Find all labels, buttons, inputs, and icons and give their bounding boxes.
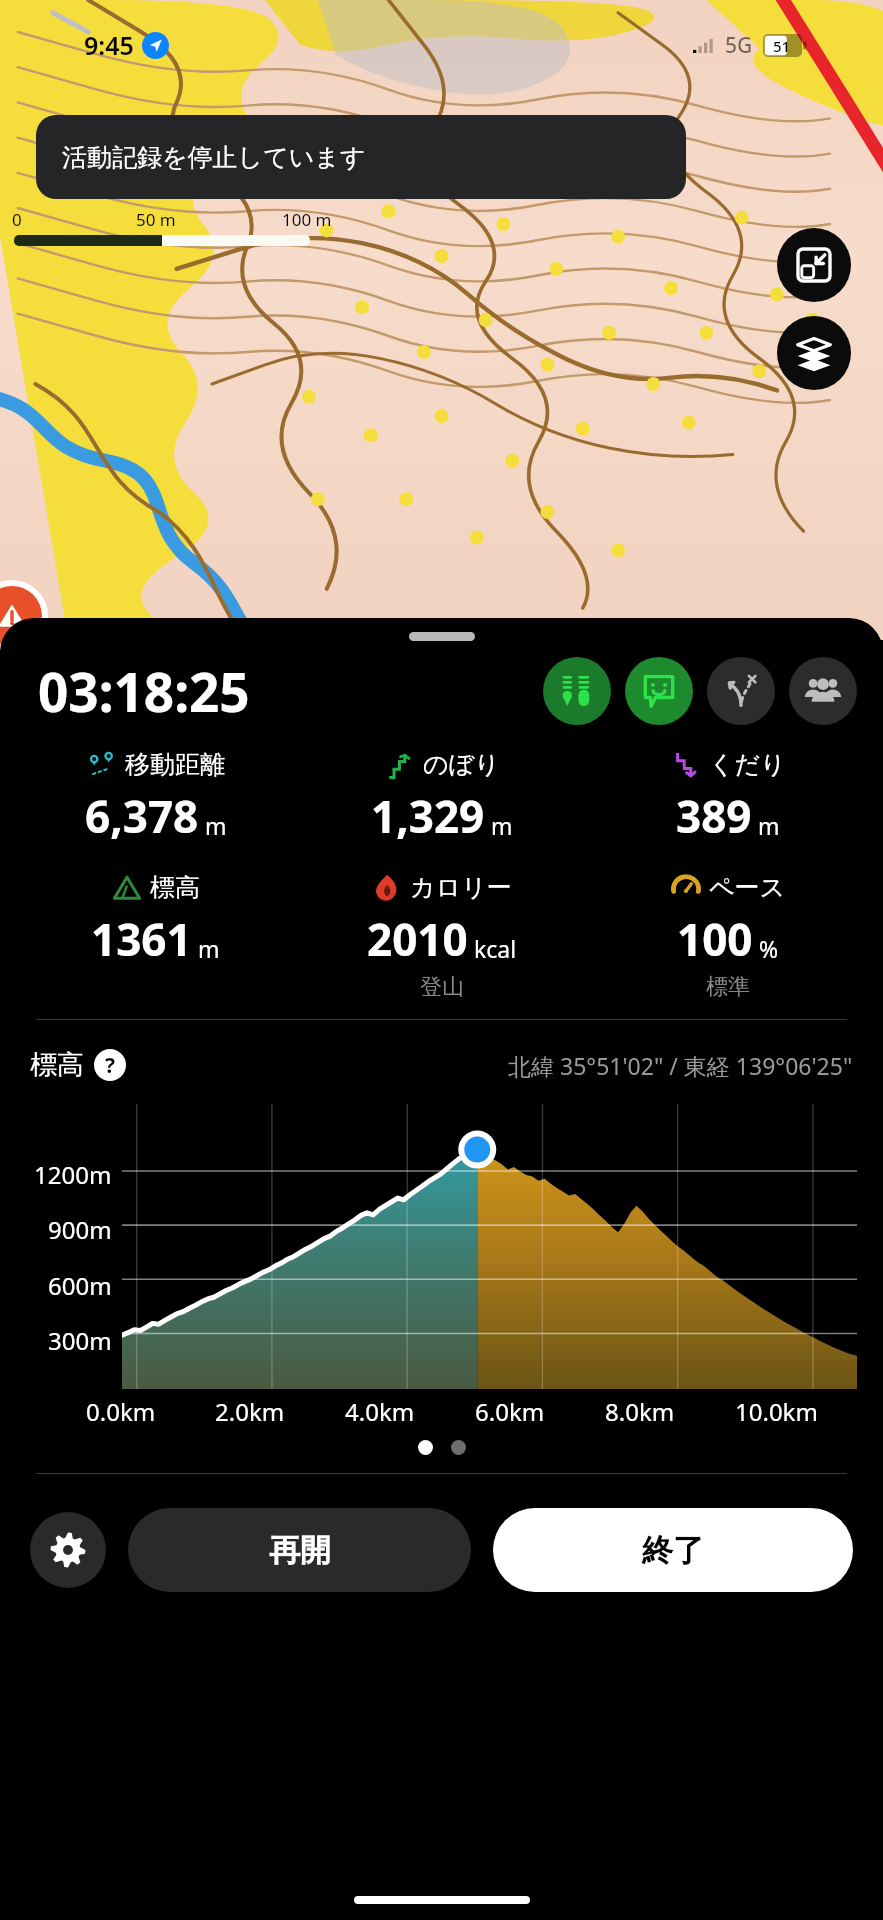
button[interactable]: Map layers xyxy=(777,316,851,390)
staticText: 2.0km xyxy=(215,1395,285,1428)
staticText: 0 xyxy=(12,208,22,231)
staticText: 300m xyxy=(48,1324,112,1357)
staticText: 900m xyxy=(48,1213,112,1246)
button[interactable]: Warning xyxy=(0,580,48,652)
staticText: 活動記録を停止しています xyxy=(62,142,366,173)
staticText: カロリー xyxy=(410,872,512,903)
staticText: 4.0km xyxy=(345,1395,415,1428)
staticText: 50 m xyxy=(136,208,176,231)
staticText: kcal xyxy=(474,933,517,964)
staticText: のぼり xyxy=(423,749,500,780)
staticText: 51 xyxy=(773,36,791,56)
staticText: 8.0km xyxy=(605,1395,675,1428)
staticText: 標高 xyxy=(150,872,200,903)
staticText: 6.0km xyxy=(475,1395,545,1428)
staticText: ペース xyxy=(709,872,786,903)
button[interactable]: Route xyxy=(707,657,775,725)
staticText: m xyxy=(205,810,227,841)
staticText: 再開 xyxy=(269,1531,331,1570)
staticText: 標準 xyxy=(706,973,750,1001)
button[interactable]: Members xyxy=(789,657,857,725)
staticText: 6,378 xyxy=(85,786,199,846)
staticText: 389 xyxy=(676,786,752,846)
staticText: くだり xyxy=(709,749,786,780)
button[interactable]: Fit to screen xyxy=(777,228,851,302)
staticText: 0.0km xyxy=(86,1395,156,1428)
staticText: m xyxy=(758,810,780,841)
staticText: 2010 xyxy=(367,909,468,969)
staticText: 1200m xyxy=(34,1158,112,1191)
staticText: m xyxy=(491,810,513,841)
staticText: 5G xyxy=(725,31,753,60)
staticText: 北緯 35°51'02" / 東経 139°06'25" xyxy=(508,1050,853,1081)
staticText: 600m xyxy=(48,1269,112,1302)
staticText: 登山 xyxy=(420,973,464,1001)
button[interactable]: 活動記録を停止しています xyxy=(36,115,686,199)
button[interactable]: Help xyxy=(94,1049,126,1081)
staticText: % xyxy=(759,933,779,964)
button[interactable]: Add note xyxy=(625,657,693,725)
staticText: 100 m xyxy=(282,208,332,231)
staticText: 標高 xyxy=(30,1048,84,1082)
staticText: 終了 xyxy=(642,1531,704,1570)
staticText: 1,329 xyxy=(371,786,485,846)
button[interactable]: Settings xyxy=(30,1512,106,1588)
staticText: m xyxy=(198,933,220,964)
staticText: 03:18:25 xyxy=(38,655,250,727)
button[interactable]: 再開 xyxy=(128,1508,471,1592)
staticText: 移動距離 xyxy=(125,749,225,780)
staticText: 100 xyxy=(677,909,753,969)
button[interactable]: 終了 xyxy=(493,1508,853,1592)
button[interactable]: Waypoint xyxy=(543,657,611,725)
staticText: 10.0km xyxy=(735,1395,818,1428)
staticText: ? xyxy=(105,1051,116,1080)
staticText: 9:45 xyxy=(84,28,134,62)
staticText: 1361 xyxy=(91,909,192,969)
